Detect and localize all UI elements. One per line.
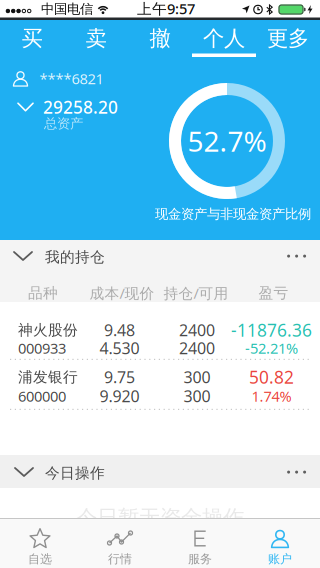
button[interactable]: 更多: [256, 20, 320, 57]
staticText: 29258.20: [43, 95, 118, 118]
staticText: 9.920: [99, 385, 139, 407]
staticText: 账户: [268, 552, 292, 566]
button[interactable]: 今日操作: [0, 455, 320, 488]
button[interactable]: 我的持仓: [0, 240, 320, 270]
staticText: 000933: [18, 338, 66, 358]
button[interactable]: 行情: [80, 518, 160, 568]
staticText: 1.74%: [251, 386, 291, 406]
staticText: ****6821: [39, 69, 103, 88]
staticText: 现金资产与非现金资产比例: [155, 206, 311, 222]
button[interactable]: 卖: [64, 20, 128, 57]
button[interactable]: ****6821: [12, 69, 103, 88]
button[interactable]: 服务: [160, 518, 240, 568]
button[interactable]: 个人: [192, 20, 256, 57]
staticText: 我的持仓: [45, 248, 105, 266]
staticText: 今日操作: [45, 464, 105, 482]
staticText: 中国电信: [41, 1, 93, 17]
staticText: 服务: [188, 552, 212, 566]
staticText: 600000: [18, 386, 66, 406]
staticText: 52.7%: [187, 122, 266, 160]
button[interactable]: 29258.20: [18, 95, 118, 118]
button[interactable]: 自选: [0, 518, 80, 568]
staticText: 2400: [179, 337, 215, 359]
staticText: 更多: [267, 25, 309, 52]
staticText: 300: [183, 366, 210, 388]
staticText: 上午9:57: [137, 0, 195, 18]
staticText: 2400: [179, 319, 215, 341]
staticText: 9.75: [104, 366, 135, 388]
staticText: 撤: [149, 25, 170, 52]
staticText: 持仓/可用: [163, 283, 228, 303]
staticText: 300: [183, 385, 210, 407]
staticText: 50.82: [249, 365, 294, 388]
button[interactable]: 买: [0, 20, 64, 57]
staticText: 个人: [203, 25, 245, 52]
staticText: 自选: [28, 552, 52, 566]
staticText: 今日暂无资金操作: [76, 505, 244, 531]
staticText: -11876.36: [231, 318, 312, 341]
staticText: 卖: [85, 25, 106, 52]
staticText: 神火股份: [18, 321, 78, 339]
staticText: 品种: [28, 284, 58, 302]
staticText: 盈亏: [258, 284, 288, 302]
staticText: 总资产: [44, 115, 83, 132]
staticText: 浦发银行: [18, 368, 78, 386]
staticText: 行情: [108, 552, 132, 566]
staticText: -52.21%: [245, 338, 298, 358]
staticText: 成本/现价: [89, 283, 154, 303]
staticText: 买: [21, 25, 42, 52]
button[interactable]: 撤: [128, 20, 192, 57]
staticText: 4.530: [99, 337, 139, 359]
staticText: 9.48: [104, 319, 135, 341]
button[interactable]: 账户: [240, 518, 320, 568]
